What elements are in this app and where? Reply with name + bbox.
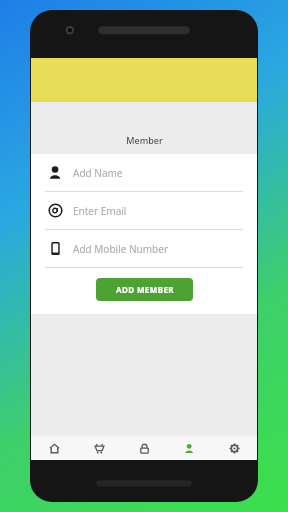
staticText: Member [126,134,163,146]
button[interactable]: Members [167,436,212,460]
button[interactable]: Home [31,436,77,460]
staticText: Add Mobile Number [73,242,169,256]
staticText: ADD MEMBER [116,284,174,295]
button[interactable]: ADD MEMBER [96,278,193,301]
staticText: Add Name [73,166,123,180]
staticText: Enter Email [73,204,127,218]
button[interactable]: Add Mobile Number [31,230,257,268]
button[interactable]: Add Name [31,154,257,192]
button[interactable]: Enter Email [31,192,257,230]
button[interactable]: Cart [77,436,122,460]
button[interactable]: Settings [212,436,257,460]
button[interactable]: Locker [122,436,167,460]
